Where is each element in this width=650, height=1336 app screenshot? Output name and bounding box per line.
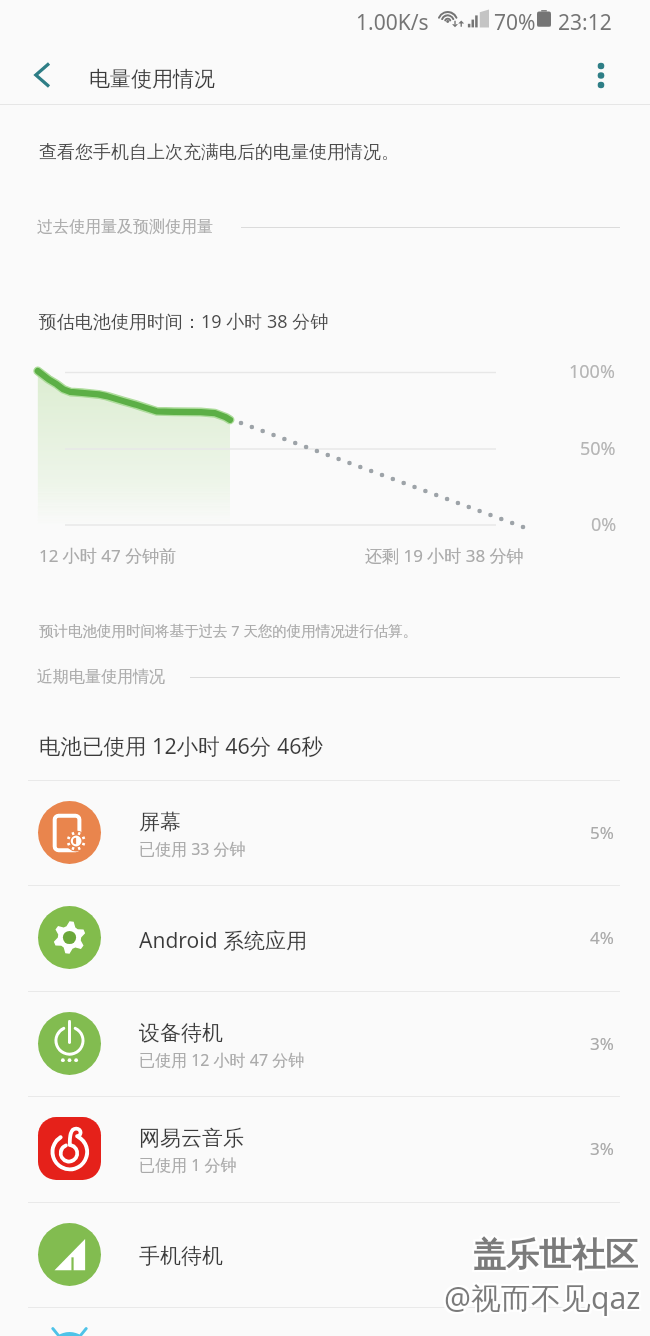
- staticText: 盖乐世社区: [475, 1236, 640, 1278]
- staticText: @视而不见qaz: [446, 1279, 643, 1320]
- staticText: 盖乐世社区: [473, 1234, 638, 1276]
- staticText: 盖乐世社区: [473, 1236, 638, 1278]
- staticText: @视而不见qaz: [442, 1277, 639, 1318]
- staticText: 100%: [569, 359, 615, 384]
- staticText: 23:12: [558, 8, 612, 37]
- staticText: 70%: [494, 8, 536, 37]
- staticText: @视而不见qaz: [442, 1279, 639, 1320]
- staticText: 盖乐世社区: [475, 1234, 640, 1276]
- staticText: 近期电量使用情况: [37, 667, 165, 687]
- staticText: 盖乐世社区: [471, 1236, 636, 1278]
- staticText: 12 小时 47 分钟前: [39, 544, 177, 567]
- staticText: 已使用 1 分钟: [139, 1154, 237, 1176]
- button[interactable]: Android 系统应用: [0, 885, 650, 990]
- staticText: 盖乐世社区: [471, 1232, 636, 1274]
- staticText: 预计电池使用时间将基于过去 7 天您的使用情况进行估算。: [39, 620, 418, 640]
- staticText: 5%: [590, 821, 614, 844]
- staticText: 查看您手机自上次充满电后的电量使用情况。: [39, 141, 399, 164]
- staticText: 电量使用情况: [89, 66, 215, 92]
- button[interactable]: 设备待机: [0, 991, 650, 1096]
- staticText: @视而不见qaz: [444, 1279, 641, 1320]
- staticText: 还剩 19 小时 38 分钟: [365, 544, 524, 567]
- staticText: 预估电池使用时间：19 小时 38 分钟: [39, 309, 329, 334]
- staticText: 过去使用量及预测使用量: [37, 217, 213, 237]
- staticText: Android 系统应用: [139, 926, 308, 955]
- staticText: 50%: [580, 436, 616, 461]
- staticText: @视而不见qaz: [444, 1277, 641, 1318]
- staticText: @视而不见qaz: [442, 1275, 639, 1316]
- button[interactable]: 网易云音乐: [0, 1096, 650, 1201]
- button[interactable]: More options: [575, 46, 629, 104]
- staticText: 电池已使用 12小时 46分 46秒: [39, 731, 324, 760]
- staticText: 4%: [590, 926, 614, 949]
- staticText: 1.00K/s: [356, 8, 429, 37]
- staticText: 屏幕: [139, 809, 181, 835]
- staticText: 盖乐世社区: [475, 1232, 640, 1274]
- staticText: @视而不见qaz: [444, 1275, 641, 1316]
- staticText: @视而不见qaz: [446, 1277, 643, 1318]
- staticText: 盖乐世社区: [471, 1234, 636, 1276]
- button[interactable]: 屏幕: [0, 780, 650, 885]
- staticText: 已使用 33 分钟: [139, 838, 246, 860]
- staticText: 3%: [590, 1137, 614, 1160]
- staticText: 盖乐世社区: [473, 1232, 638, 1274]
- button[interactable]: Back: [10, 46, 78, 104]
- staticText: 网易云音乐: [139, 1125, 244, 1151]
- staticText: 已使用 12 小时 47 分钟: [139, 1049, 305, 1071]
- button[interactable]: 手机待机: [0, 1202, 650, 1307]
- staticText: 设备待机: [139, 1020, 223, 1046]
- staticText: 3%: [590, 1032, 614, 1055]
- staticText: 0%: [591, 512, 617, 537]
- staticText: 手机待机: [139, 1243, 223, 1269]
- staticText: @视而不见qaz: [446, 1275, 643, 1316]
